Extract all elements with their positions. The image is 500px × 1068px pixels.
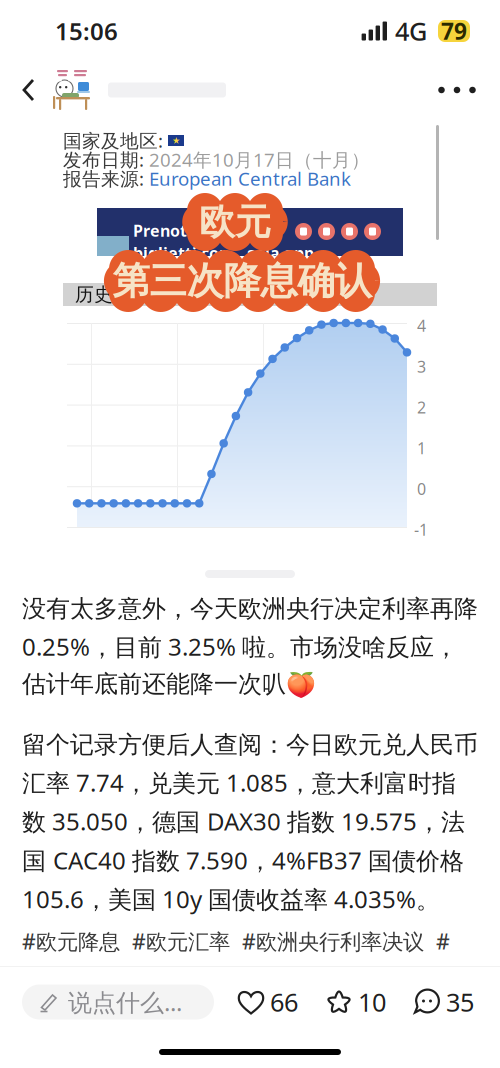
staticText: 没有太多意外，今天欧洲央行决定利率再降0.25%，目前 3.25% 啦。市场没啥… [22,594,478,699]
button[interactable]: More options [430,68,484,112]
staticText: -1 [414,519,428,540]
staticText: 2024年10月17日（十月） [149,147,370,172]
button[interactable]: 10 [321,985,390,1019]
staticText: 10 [358,985,386,1019]
staticText: 留个记录方便后人查阅：今日欧元兑人民币汇率 7.74，兑美元 1.085，意大利… [22,730,478,915]
staticText: #欧元降息 #欧元汇率 #欧洲央行利率决议 # [22,927,450,955]
staticText: biglietti con …sola app [133,242,314,263]
staticText: 说点什么... [68,986,182,1018]
staticText: 报告来源: [63,166,149,191]
staticText: 3 [417,356,426,377]
staticText: 35 [446,985,474,1019]
staticText: 79 [441,16,467,46]
staticText: 国家及地区: [63,128,168,153]
staticText: 4 [417,315,426,336]
button[interactable]: Back [12,68,46,112]
staticText: 第三次降息确认 [112,258,371,304]
staticText: 历史 [75,283,113,306]
staticText: 2 [417,397,426,418]
button[interactable]: 35 [409,985,478,1019]
staticText: 0 [417,478,426,499]
staticText: 1 [417,437,426,459]
staticText: European Central Bank [149,166,351,191]
staticText: 4G [395,14,427,48]
staticText: ★ [172,135,180,146]
button[interactable]: 说点什么... [22,984,214,1019]
staticText: 欧元 [199,200,271,244]
staticText: 发布日期: [63,147,149,172]
button[interactable]: 66 [233,985,302,1019]
staticText: 15:06 [55,15,118,47]
staticText: Prenota tu… [133,220,232,241]
staticText: 66 [270,985,298,1019]
